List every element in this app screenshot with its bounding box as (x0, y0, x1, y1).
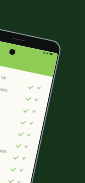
staticText: Downloads (0, 84, 9, 93)
button[interactable]: Sync (0, 94, 47, 119)
button[interactable]: Account (9, 48, 16, 55)
staticText: Clean Up (0, 72, 7, 80)
button[interactable]: Clean Up (0, 70, 52, 96)
button[interactable]: Photos (0, 129, 39, 154)
button[interactable]: Notes (0, 117, 42, 143)
button[interactable]: Remove Old Apps (0, 140, 37, 166)
button[interactable]: Downloads (0, 82, 49, 107)
button[interactable]: Restore (0, 152, 34, 178)
button[interactable]: Backup (0, 105, 44, 131)
staticText: Remove Old Apps (0, 142, 8, 154)
button[interactable]: Scan (0, 164, 32, 183)
